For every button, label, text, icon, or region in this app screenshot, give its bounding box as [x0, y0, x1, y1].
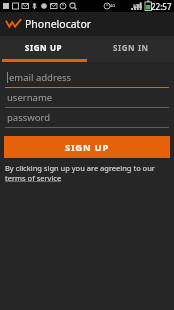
staticText: 22:57 [151, 1, 172, 12]
button[interactable]: SIGN UP [0, 36, 87, 59]
staticText: SIGN UP [65, 141, 109, 154]
staticText: 60% [133, 3, 142, 9]
staticText: 4G [110, 3, 116, 8]
staticText: SIGN UP [25, 42, 63, 53]
button[interactable]: password [5, 108, 169, 128]
other: Phonelocator logo [6, 18, 21, 30]
staticText: email address [9, 71, 72, 84]
staticText: Phonelocator [25, 17, 92, 31]
button[interactable]: username [5, 88, 169, 108]
staticText: By clicking sign up you are agreeing to … [5, 163, 169, 183]
staticText: password [7, 111, 51, 124]
staticText: username [7, 91, 53, 104]
button[interactable]: SIGN UP [4, 136, 170, 158]
button[interactable]: email address [5, 68, 169, 88]
button[interactable]: SIGN IN [87, 36, 174, 59]
staticText: SIGN IN [113, 42, 149, 53]
button[interactable]: By clicking sign up you are agreeing to … [5, 163, 169, 183]
